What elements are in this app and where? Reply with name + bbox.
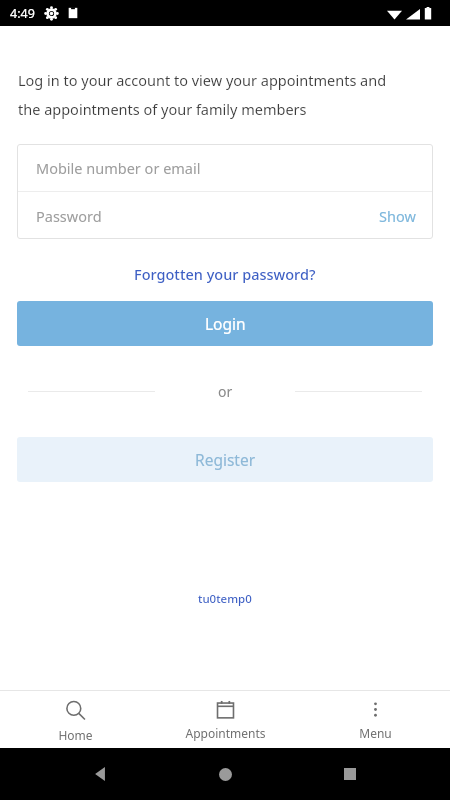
button[interactable]: Back (77, 750, 125, 798)
staticText: Register (195, 449, 256, 470)
other: Menu (366, 700, 385, 719)
staticText: Forgotten your password? (134, 264, 316, 284)
button[interactable]: Appointments (150, 691, 300, 748)
staticText: tu0temp0 (198, 591, 252, 607)
other: Appointments (216, 700, 235, 719)
button[interactable]: Show (377, 192, 418, 239)
button[interactable]: Login (17, 301, 433, 346)
staticText: the appointments of your family members (18, 99, 307, 119)
button[interactable]: Recents (326, 750, 374, 798)
staticText: Login (205, 313, 246, 334)
staticText: 4:49 (10, 5, 35, 22)
button[interactable]: Menu (300, 691, 450, 748)
staticText: Password (36, 206, 102, 226)
staticText: or (218, 382, 233, 401)
button[interactable]: Register (17, 437, 433, 482)
button[interactable]: Home (0, 691, 150, 748)
other: Home (65, 700, 86, 721)
staticText: Log in to your account to view your appo… (18, 70, 387, 90)
staticText: Menu (359, 725, 392, 741)
button[interactable]: Home (201, 750, 249, 798)
staticText: Home (58, 727, 93, 743)
staticText: Show (379, 206, 416, 226)
staticText: Appointments (185, 725, 266, 741)
button[interactable]: Mobile number or email (17, 144, 433, 191)
button[interactable]: tu0temp0 (188, 587, 262, 611)
button[interactable]: Forgotten your password? (122, 259, 328, 289)
staticText: Mobile number or email (36, 158, 201, 178)
button[interactable]: Password (36, 192, 377, 239)
